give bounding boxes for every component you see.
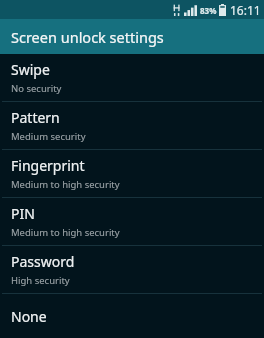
staticText: No security <box>11 82 62 95</box>
staticText: Swipe <box>11 60 50 79</box>
staticText: Fingerprint <box>11 156 85 175</box>
button[interactable]: Swipe <box>0 54 264 101</box>
staticText: Screen unlock settings <box>11 27 164 47</box>
staticText: None <box>11 307 47 326</box>
button[interactable]: Pattern <box>0 102 264 149</box>
button[interactable]: None <box>0 294 264 338</box>
staticText: 16:11 <box>230 2 261 18</box>
staticText: Medium to high security <box>11 178 120 191</box>
staticText: High security <box>11 274 70 287</box>
staticText: Password <box>11 252 75 271</box>
staticText: 83% <box>200 5 217 16</box>
staticText: Medium security <box>11 130 86 143</box>
staticText: PIN <box>11 204 35 223</box>
button[interactable]: Password <box>0 246 264 293</box>
button[interactable]: Fingerprint <box>0 150 264 197</box>
staticText: Pattern <box>11 108 60 127</box>
staticText: Medium to high security <box>11 226 120 239</box>
button[interactable]: PIN <box>0 198 264 245</box>
